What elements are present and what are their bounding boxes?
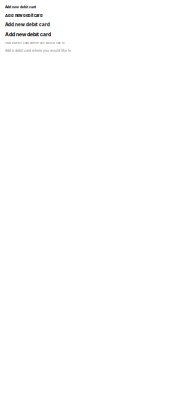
staticText: Add a debit card where you would like to [5, 49, 71, 53]
staticText: Add new debit card [5, 5, 36, 9]
staticText: Add new debit card [5, 13, 43, 18]
staticText: Add a debit card where you would like to [5, 41, 65, 45]
staticText: Add new debit card [5, 22, 50, 27]
staticText: Add new debit card [5, 31, 51, 37]
